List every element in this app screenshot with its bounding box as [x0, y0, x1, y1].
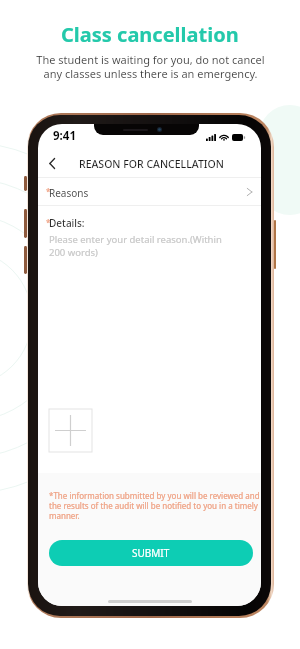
- button[interactable]: SUBMIT: [49, 540, 253, 566]
- staticText: REASON FOR CANCELLATION: [79, 157, 224, 171]
- staticText: Reasons: [49, 186, 89, 200]
- staticText: Class cancellation: [61, 21, 239, 48]
- button[interactable]: *: [38, 178, 261, 205]
- staticText: SUBMIT: [132, 546, 170, 560]
- button[interactable]: Back: [38, 149, 66, 177]
- staticText: *: [46, 186, 49, 197]
- staticText: Details:: [49, 216, 85, 230]
- staticText: 9:41: [53, 128, 76, 144]
- button[interactable]: Add photo: [49, 409, 92, 452]
- staticText: *The information submitted by you will b…: [49, 490, 260, 521]
- staticText: Please enter your detail reason.(Within …: [49, 233, 222, 259]
- staticText: The student is waiting for you, do not c…: [36, 52, 265, 82]
- staticText: *: [46, 217, 49, 228]
